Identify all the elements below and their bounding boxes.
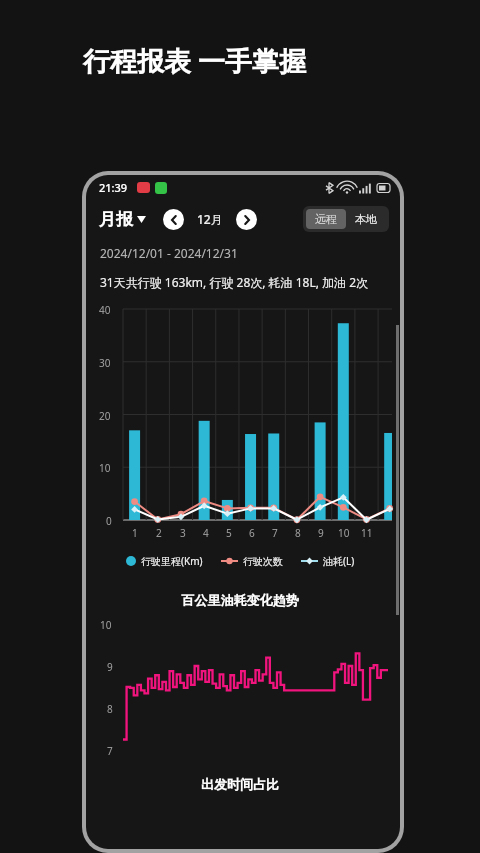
staticText: 月报: [99, 209, 133, 230]
staticText: 10: [338, 526, 350, 540]
staticText: 5: [226, 526, 232, 540]
staticText: 10: [99, 461, 111, 475]
staticText: 油耗(L): [323, 554, 355, 568]
staticText: 百公里油耗变化趋势: [86, 592, 394, 608]
staticText: 7: [272, 526, 278, 540]
staticText: 远程: [315, 212, 337, 226]
staticText: 2024/12/01 - 2024/12/31: [100, 245, 238, 261]
staticText: 10: [100, 618, 112, 632]
staticText: 21:39: [99, 180, 128, 195]
button[interactable]: 本地: [346, 209, 386, 229]
staticText: 3: [180, 526, 186, 540]
staticText: 2: [156, 526, 162, 540]
staticText: 30: [99, 356, 111, 370]
staticText: 20: [99, 409, 111, 423]
staticText: 40: [99, 303, 111, 317]
staticText: 7: [107, 744, 113, 758]
staticText: 行程报表 一手掌握: [83, 42, 307, 79]
button[interactable]: 月报: [99, 209, 146, 230]
staticText: 8: [107, 702, 113, 716]
staticText: 12月: [197, 211, 223, 227]
button[interactable]: Previous month: [163, 209, 184, 230]
staticText: 行驶次数: [243, 555, 283, 568]
staticText: 4: [203, 526, 209, 540]
staticText: 11: [361, 526, 373, 540]
staticText: 8: [295, 526, 301, 540]
staticText: 0: [106, 514, 112, 528]
staticText: 6: [249, 526, 255, 540]
staticText: 1: [132, 526, 138, 540]
button[interactable]: Next month: [236, 209, 257, 230]
staticText: 9: [318, 526, 324, 540]
staticText: 本地: [355, 212, 377, 226]
staticText: 行驶里程(Km): [141, 554, 203, 568]
button[interactable]: 远程: [306, 209, 346, 229]
staticText: 31天共行驶 163km, 行驶 28次, 耗油 18L, 加油 2次: [100, 274, 369, 290]
staticText: 9: [107, 660, 113, 674]
staticText: 出发时间占比: [86, 776, 394, 792]
